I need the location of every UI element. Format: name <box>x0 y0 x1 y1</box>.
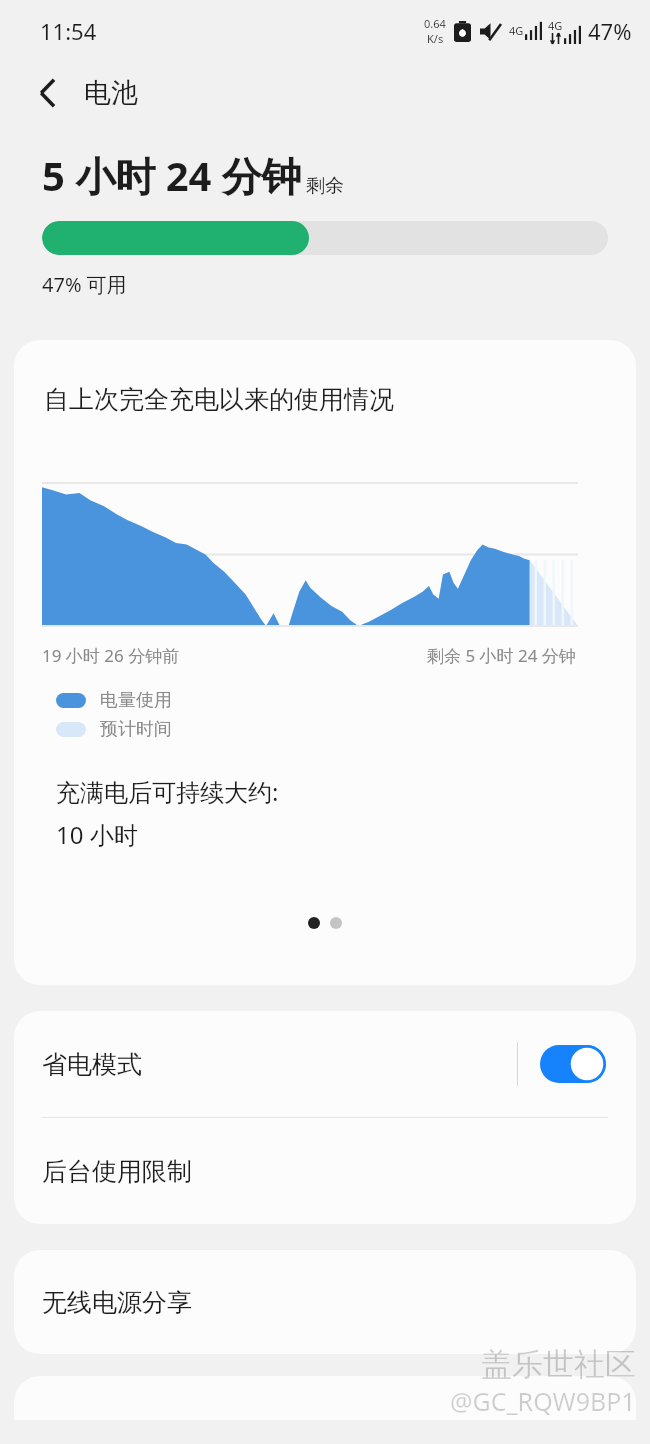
staticText: 5 小时 24 分钟 <box>42 148 302 203</box>
staticText: 自上次完全充电以来的使用情况 <box>44 384 394 415</box>
staticText: 预计时间 <box>100 718 172 741</box>
staticText: 47% 可用 <box>42 271 127 298</box>
staticText: 剩余 <box>306 174 344 198</box>
staticText: 0.64 <box>424 16 446 31</box>
staticText: 剩余 5 小时 24 分钟 <box>427 644 576 667</box>
staticText: 盖乐世社区 <box>481 1345 636 1384</box>
staticText: 4G <box>548 18 563 33</box>
staticText: 47% <box>588 16 632 46</box>
staticText: K/s <box>427 31 444 46</box>
staticText: 19 小时 26 分钟前 <box>42 644 180 667</box>
staticText: 电量使用 <box>100 689 172 712</box>
staticText: 无线电源分享 <box>42 1287 192 1318</box>
button[interactable]: 无线电源分享 <box>14 1250 636 1354</box>
staticText: 10 小时 <box>56 818 138 851</box>
button[interactable] <box>14 1376 636 1420</box>
button[interactable]: 后台使用限制 <box>14 1118 636 1224</box>
button[interactable]: 省电模式 <box>14 1011 636 1117</box>
staticText: 11:54 <box>40 16 97 46</box>
staticText: 电池 <box>84 76 138 110</box>
staticText: 后台使用限制 <box>42 1156 192 1187</box>
staticText: 4G <box>509 23 524 38</box>
staticText: @GC_RQW9BP1 <box>450 1384 636 1418</box>
staticText: 省电模式 <box>42 1049 142 1080</box>
button[interactable]: Back <box>24 69 72 117</box>
button[interactable]: Power saving toggle <box>540 1045 606 1083</box>
staticText: 充满电后可持续大约: <box>56 775 279 808</box>
